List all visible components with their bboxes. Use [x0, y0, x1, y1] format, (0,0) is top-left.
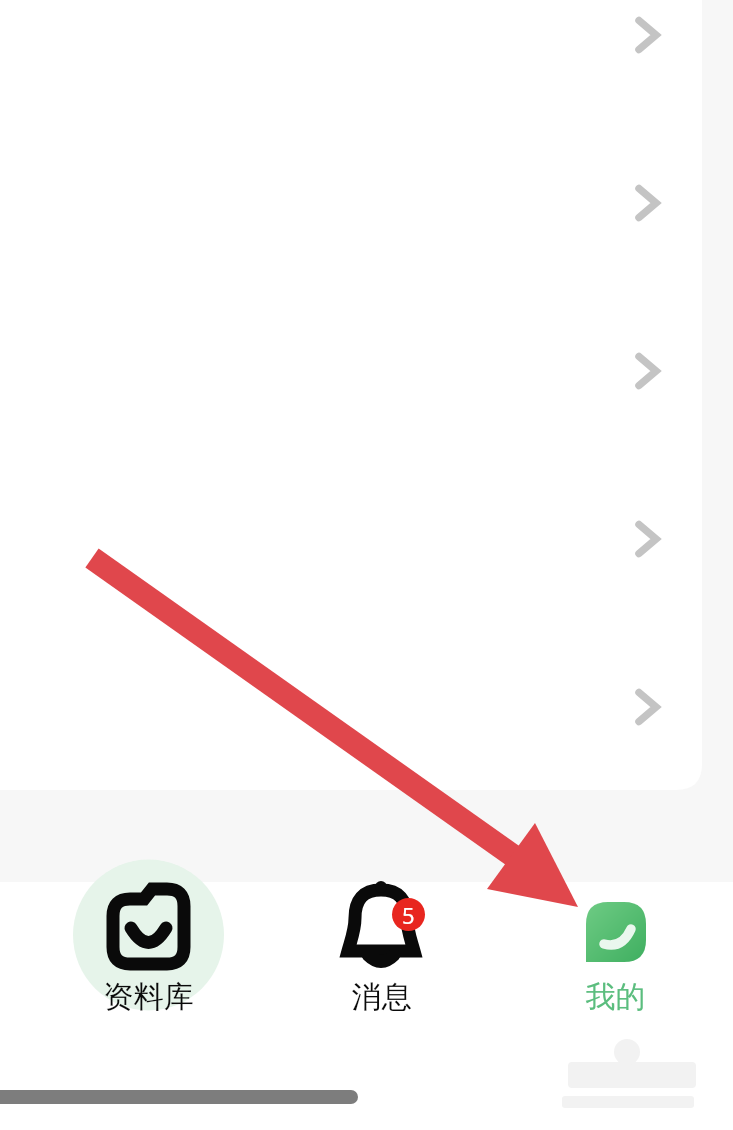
button[interactable]: 我的 — [501, 882, 730, 1022]
staticText: 消息 — [267, 978, 496, 1018]
staticText: 我的 — [501, 978, 730, 1018]
button[interactable]: 消息 — [267, 882, 496, 1022]
staticText: 5 — [402, 900, 415, 930]
button[interactable]: 资料库 — [34, 882, 263, 1022]
staticText: 资料库 — [34, 978, 263, 1018]
